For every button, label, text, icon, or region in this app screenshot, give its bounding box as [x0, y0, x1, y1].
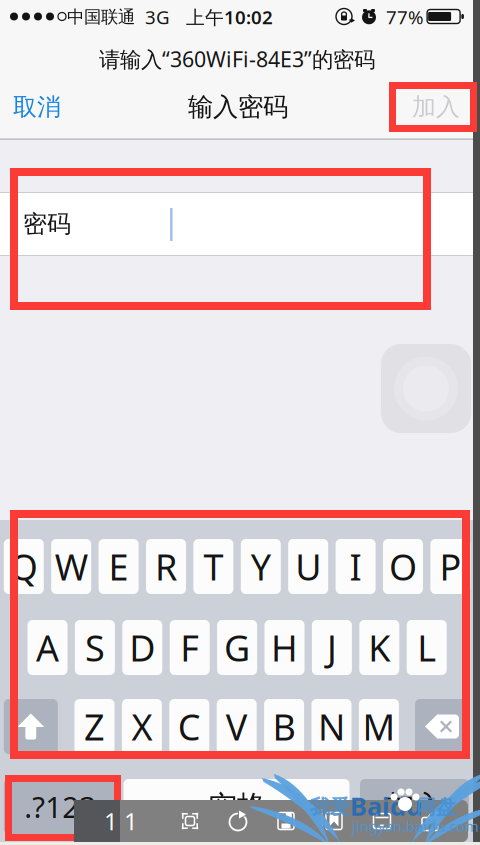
staticText: 1 — [124, 805, 138, 837]
button[interactable]: J — [312, 620, 352, 675]
button[interactable]: 加入 — [360, 779, 469, 834]
staticText: L — [417, 624, 436, 671]
staticText: B — [273, 703, 296, 750]
button[interactable]: U — [288, 539, 328, 594]
button[interactable]: A — [27, 620, 67, 675]
staticText: Z — [84, 703, 105, 750]
staticText: T — [203, 543, 223, 590]
button[interactable]: B — [264, 699, 304, 754]
staticText: Y — [251, 543, 271, 590]
button[interactable]: F — [170, 620, 210, 675]
staticText: P — [439, 543, 461, 590]
staticText: K — [368, 624, 390, 671]
staticText: 上午10:02 — [186, 5, 273, 29]
staticText: G — [224, 624, 250, 671]
button[interactable]: V — [217, 699, 257, 754]
staticText: jingyan.baidu.com — [352, 816, 479, 836]
staticText: S — [85, 624, 105, 671]
staticText: 我爱 — [310, 795, 350, 819]
staticText: M — [362, 703, 395, 750]
staticText: I — [350, 543, 362, 590]
staticText: D — [129, 624, 155, 671]
staticText: Q — [10, 543, 38, 590]
staticText: 网盘 — [416, 795, 456, 819]
staticText: H — [271, 624, 298, 671]
button[interactable]: D — [122, 620, 162, 675]
button[interactable]: Y — [241, 539, 281, 594]
staticText: 输入密码 — [188, 91, 288, 122]
staticText: C — [178, 703, 201, 750]
staticText: .?123 — [24, 787, 96, 826]
button[interactable]: S — [75, 620, 115, 675]
button[interactable]: I — [336, 539, 376, 594]
staticText: R — [155, 543, 177, 590]
button[interactable]: H — [264, 620, 304, 675]
staticText: U — [295, 543, 321, 590]
staticText: 请输入“360WiFi-84E3”的密码 — [99, 45, 375, 73]
staticText: X — [131, 703, 152, 750]
button[interactable]: R — [146, 539, 186, 594]
staticText: Baidu — [350, 789, 422, 823]
button[interactable]: 取消 — [193, 64, 279, 110]
button[interactable]: Shift — [4, 699, 58, 754]
button[interactable]: T — [193, 539, 233, 594]
staticText: 加入 — [385, 788, 443, 824]
staticText: A — [36, 624, 59, 671]
button[interactable]: X — [122, 699, 162, 754]
button[interactable]: O — [383, 539, 423, 594]
staticText: 1 — [104, 805, 118, 837]
button[interactable]: Z — [74, 699, 114, 754]
staticText: J — [327, 624, 337, 671]
staticText: 77% — [386, 5, 424, 29]
staticText: O — [389, 543, 417, 590]
button[interactable]: K — [359, 620, 399, 675]
button[interactable]: Q — [4, 539, 44, 594]
button[interactable]: .?123 — [4, 779, 117, 834]
staticText: 中国联通 — [67, 6, 135, 28]
button[interactable]: W — [51, 539, 91, 594]
staticText: 3G — [145, 5, 170, 29]
staticText: 空格 — [207, 788, 265, 824]
staticText: 加入 — [412, 92, 460, 122]
button[interactable]: L — [407, 620, 447, 675]
staticText: W — [55, 543, 88, 590]
button[interactable]: 空格 — [123, 779, 349, 834]
button[interactable]: AssistiveTouch — [381, 344, 471, 433]
staticText: 密码 — [23, 209, 71, 239]
staticText: F — [180, 624, 199, 671]
button[interactable]: Delete — [415, 699, 469, 754]
staticText: 取消 — [13, 92, 61, 122]
button[interactable]: P — [430, 539, 470, 594]
staticText: V — [226, 703, 248, 750]
button[interactable]: 加入 — [196, 64, 277, 110]
button[interactable]: N — [311, 699, 351, 754]
button[interactable]: G — [217, 620, 257, 675]
staticText: E — [109, 543, 129, 590]
button[interactable]: M — [359, 699, 399, 754]
button[interactable]: E — [99, 539, 139, 594]
staticText: N — [318, 703, 345, 750]
button[interactable]: C — [169, 699, 209, 754]
